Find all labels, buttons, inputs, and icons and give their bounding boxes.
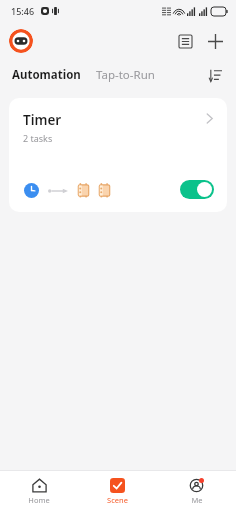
- button[interactable]: Logs: [170, 26, 200, 56]
- button[interactable]: Add: [200, 26, 230, 56]
- button[interactable]: Timer: [9, 98, 227, 212]
- button[interactable]: Open details: [197, 106, 221, 130]
- button[interactable]: Scene: [78, 471, 157, 512]
- staticText: Automation: [12, 67, 81, 83]
- staticText: Scene: [107, 495, 128, 505]
- button[interactable]: Tap-to-Run: [94, 64, 157, 86]
- button[interactable]: Sort: [202, 62, 228, 88]
- staticText: Timer: [23, 111, 62, 129]
- staticText: 15:46: [11, 5, 35, 17]
- button[interactable]: App logo: [9, 29, 33, 53]
- staticText: Home: [28, 495, 50, 505]
- button[interactable]: Toggle automation: [180, 180, 214, 199]
- staticText: Tap-to-Run: [96, 67, 155, 83]
- staticText: 2 tasks: [23, 132, 53, 144]
- button[interactable]: Automation: [10, 64, 83, 86]
- button[interactable]: Me: [157, 471, 236, 512]
- staticText: Me: [191, 495, 203, 505]
- button[interactable]: Home: [0, 471, 78, 512]
